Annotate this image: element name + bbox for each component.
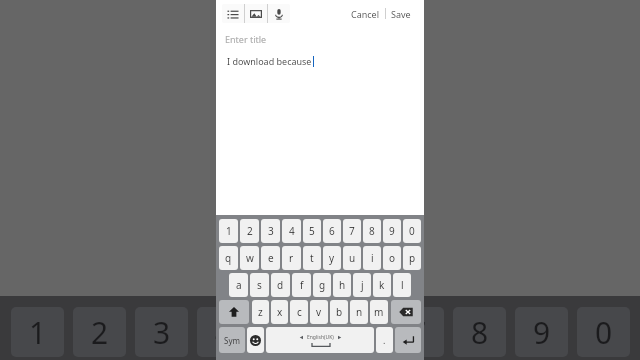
button[interactable]: f [292, 273, 311, 297]
button[interactable]: o [383, 246, 401, 270]
staticText: Enter title [225, 33, 267, 45]
button[interactable]: Enter [395, 327, 421, 353]
staticText: 5 [309, 224, 315, 238]
button[interactable]: z [252, 300, 269, 324]
button[interactable]: Sym [219, 327, 245, 353]
staticText: m [374, 305, 384, 319]
button[interactable]: e [261, 246, 280, 270]
staticText: z [258, 305, 263, 319]
button[interactable]: p [403, 246, 421, 270]
button[interactable]: i [363, 246, 381, 270]
staticText: 8 [471, 312, 489, 353]
button[interactable]: w [240, 246, 259, 270]
staticText: 3 [268, 224, 274, 238]
staticText: 0 [595, 312, 613, 353]
button[interactable]: Backspace [391, 300, 421, 324]
button[interactable]: y [323, 246, 341, 270]
button[interactable]: m [370, 300, 388, 324]
staticText: 8 [369, 224, 375, 238]
staticText: e [268, 251, 274, 265]
staticText: y [329, 251, 335, 265]
staticText: Cancel [351, 8, 380, 20]
staticText: English(UK) [307, 334, 334, 341]
staticText: p [409, 251, 416, 265]
button[interactable]: n [350, 300, 368, 324]
staticText: k [379, 278, 385, 292]
button[interactable]: 5 [303, 219, 321, 243]
staticText: v [316, 305, 322, 319]
staticText: Sym [224, 335, 240, 346]
button[interactable]: Cancel [346, 5, 385, 23]
staticText: u [349, 251, 356, 265]
button[interactable]: d [271, 273, 290, 297]
staticText: h [339, 278, 346, 292]
staticText: 0 [409, 224, 415, 238]
staticText: 1 [226, 224, 232, 238]
staticText: l [401, 278, 404, 292]
staticText: i [371, 251, 374, 265]
staticText: 4 [289, 224, 295, 238]
staticText: x [277, 305, 283, 319]
staticText: n [356, 305, 363, 319]
button[interactable]: Insert image [245, 4, 267, 23]
staticText: o [389, 251, 396, 265]
button[interactable]: q [219, 246, 238, 270]
staticText: s [257, 278, 262, 292]
button[interactable]: 4 [282, 219, 301, 243]
button[interactable]: 8 [363, 219, 381, 243]
button[interactable]: j [353, 273, 371, 297]
button[interactable]: Shift [219, 300, 249, 324]
staticText: a [236, 278, 242, 292]
button[interactable]: b [330, 300, 348, 324]
staticText: r [289, 251, 294, 265]
button[interactable]: Bullet list [222, 4, 244, 23]
button[interactable]: c [290, 300, 308, 324]
staticText: 4 [215, 312, 233, 353]
button[interactable]: u [343, 246, 361, 270]
button[interactable]: 1 [219, 219, 238, 243]
button[interactable]: 7 [343, 219, 361, 243]
button[interactable]: 3 [261, 219, 280, 243]
staticText: I download because [227, 55, 312, 67]
staticText: 3 [153, 312, 171, 353]
staticText: d [277, 278, 284, 292]
button[interactable]: t [303, 246, 321, 270]
staticText: 9 [389, 224, 395, 238]
staticText: q [225, 251, 232, 265]
button[interactable]: 6 [323, 219, 341, 243]
staticText: 7 [349, 224, 355, 238]
staticText: 7 [409, 312, 427, 353]
button[interactable]: Space [266, 327, 374, 353]
staticText: . [383, 334, 386, 346]
staticText: 1 [29, 312, 47, 353]
button[interactable]: v [310, 300, 328, 324]
button[interactable]: 0 [403, 219, 421, 243]
button[interactable]: k [373, 273, 391, 297]
staticText: 9 [533, 312, 551, 353]
button[interactable]: Voice input [268, 4, 290, 23]
button[interactable]: r [282, 246, 301, 270]
button[interactable]: 9 [383, 219, 401, 243]
button[interactable]: Emoji [247, 327, 264, 353]
button[interactable]: g [313, 273, 331, 297]
button[interactable]: l [393, 273, 411, 297]
staticText: c [297, 305, 302, 319]
button[interactable]: Save [386, 5, 416, 23]
button[interactable]: a [229, 273, 248, 297]
staticText: t [310, 251, 314, 265]
staticText: f [300, 278, 304, 292]
button[interactable]: . [376, 327, 393, 353]
staticText: 2 [91, 312, 109, 353]
staticText: 6 [329, 224, 335, 238]
staticText: j [361, 278, 364, 292]
staticText: Save [391, 8, 411, 20]
button[interactable]: x [271, 300, 288, 324]
staticText: b [336, 305, 343, 319]
button[interactable]: 2 [240, 219, 259, 243]
staticText: g [319, 278, 326, 292]
button[interactable]: h [333, 273, 351, 297]
staticText: 2 [247, 224, 253, 238]
button[interactable]: s [250, 273, 269, 297]
staticText: w [246, 251, 254, 265]
